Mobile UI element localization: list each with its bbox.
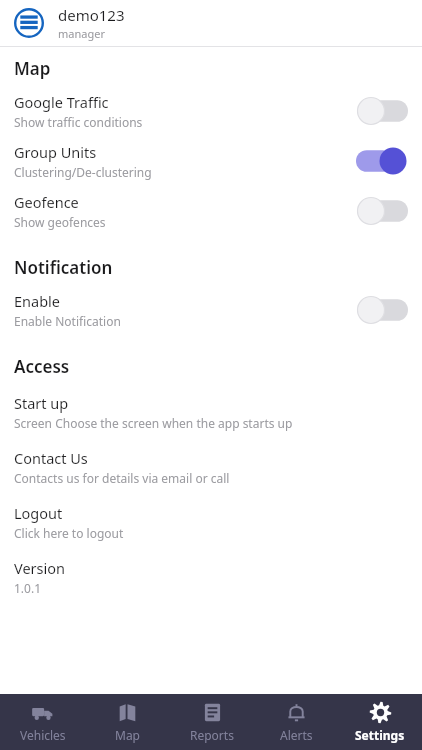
staticText: Show traffic conditions — [14, 114, 143, 130]
staticText: Google Traffic — [14, 92, 109, 112]
button[interactable]: Map — [85, 694, 170, 750]
staticText: Vehicles — [20, 727, 66, 743]
button[interactable]: Logout — [0, 494, 422, 549]
staticText: Show geofences — [14, 214, 106, 230]
staticText: Access — [14, 355, 70, 378]
staticText: Start up — [14, 393, 69, 413]
button[interactable]: Geofence — [0, 186, 422, 236]
button[interactable]: On — [356, 146, 408, 176]
button[interactable]: Reports — [170, 694, 254, 750]
staticText: Enable Notification — [14, 313, 121, 329]
staticText: Enable — [14, 291, 60, 311]
staticText: demo123 — [58, 5, 125, 25]
staticText: Map — [14, 57, 51, 80]
staticText: Logout — [14, 503, 63, 523]
button[interactable]: Off — [356, 96, 408, 126]
staticText: manager — [58, 26, 105, 41]
button[interactable]: Settings — [338, 694, 422, 750]
staticText: Group Units — [14, 142, 97, 162]
button[interactable]: Contact Us — [0, 439, 422, 494]
staticText: Contacts us for details via email or cal… — [14, 470, 230, 486]
button[interactable]: Vehicles — [0, 694, 85, 750]
staticText: Geofence — [14, 192, 79, 212]
staticText: Clustering/De-clustering — [14, 164, 152, 180]
button[interactable]: Group Units — [0, 136, 422, 186]
button[interactable]: Off — [356, 295, 408, 325]
staticText: Map — [115, 727, 140, 743]
staticText: Reports — [190, 727, 234, 743]
button[interactable]: Start up — [0, 384, 422, 439]
staticText: Alerts — [280, 727, 313, 743]
button[interactable]: Enable — [0, 285, 422, 335]
button[interactable]: Alerts — [254, 694, 338, 750]
button[interactable]: Off — [356, 196, 408, 226]
staticText: Contact Us — [14, 448, 88, 468]
staticText: Click here to logout — [14, 525, 124, 541]
button[interactable]: Google Traffic — [0, 86, 422, 136]
staticText: Settings — [355, 727, 405, 743]
staticText: 1.0.1 — [14, 580, 42, 596]
staticText: Notification — [14, 256, 113, 279]
button[interactable]: demo123 — [0, 0, 422, 46]
staticText: Version — [14, 558, 65, 578]
staticText: Screen Choose the screen when the app st… — [14, 415, 293, 431]
button[interactable]: Version — [0, 549, 422, 604]
